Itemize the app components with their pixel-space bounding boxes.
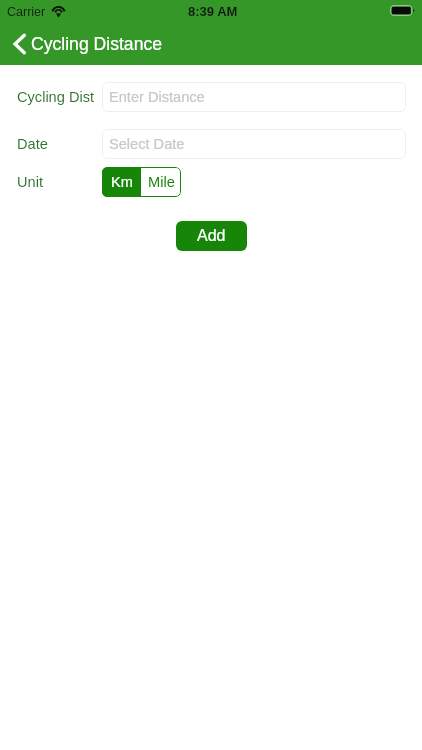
staticText: 8:39 AM <box>188 4 238 19</box>
other: Back <box>12 33 26 55</box>
staticText: Select Date <box>109 136 185 152</box>
button[interactable]: Enter Distance <box>102 82 406 112</box>
button[interactable]: Select Date <box>102 129 406 159</box>
button[interactable]: Km <box>102 167 141 197</box>
staticText: Km <box>111 174 133 190</box>
staticText: Cycling Dist <box>17 89 95 105</box>
other: Battery full <box>390 5 416 16</box>
button[interactable]: Add <box>176 221 247 251</box>
button[interactable]: Mile <box>141 167 181 197</box>
button[interactable]: Back <box>0 33 163 55</box>
staticText: Date <box>17 136 48 152</box>
staticText: Enter Distance <box>109 89 205 105</box>
staticText: Add <box>197 227 226 245</box>
staticText: Carrier <box>7 5 46 19</box>
staticText: Unit <box>17 174 43 190</box>
staticText: Cycling Distance <box>31 34 163 54</box>
staticText: Mile <box>148 174 175 190</box>
